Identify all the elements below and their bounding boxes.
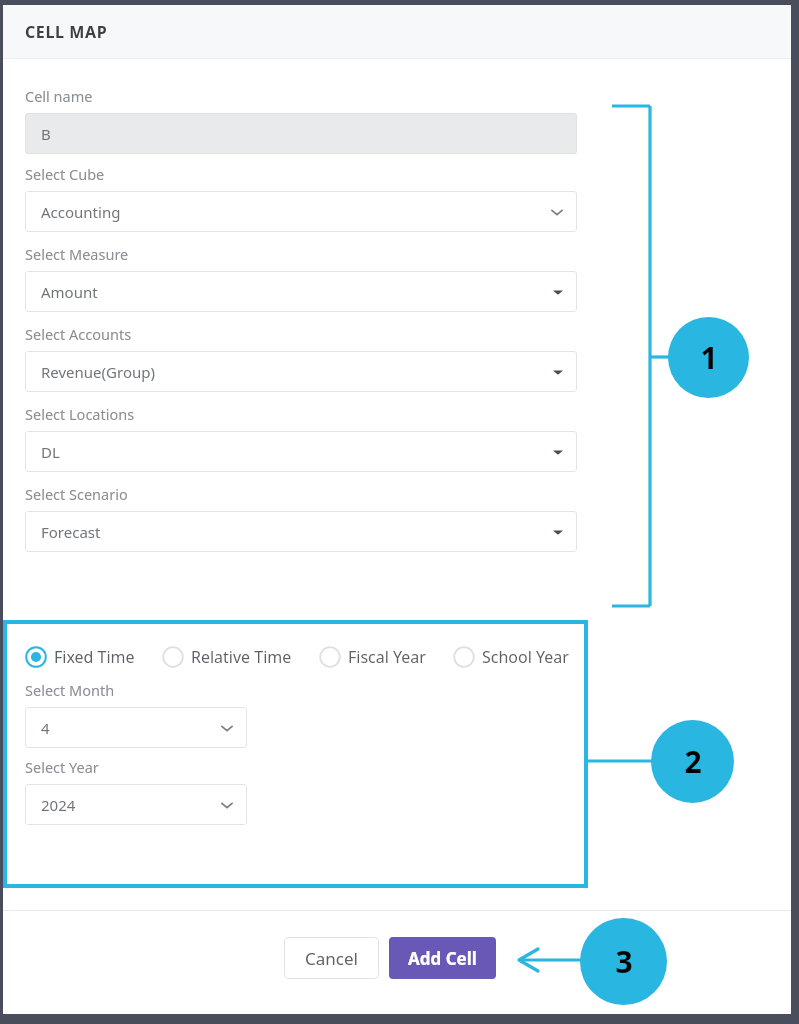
staticText: Select Accounts (25, 324, 132, 344)
staticText: Revenue(Group) (41, 362, 155, 382)
button[interactable]: Accounting (25, 191, 577, 232)
button[interactable]: Amount (25, 271, 577, 312)
button[interactable]: DL (25, 431, 577, 472)
staticText: Cancel (305, 947, 358, 970)
staticText: Amount (41, 282, 98, 302)
button[interactable]: School Year (453, 646, 571, 668)
button[interactable]: Cancel (284, 937, 379, 979)
staticText: School Year (482, 646, 569, 668)
button[interactable]: Fixed Time (25, 646, 137, 668)
button[interactable]: 2024 (25, 784, 247, 825)
staticText: 1 (700, 337, 718, 378)
button[interactable]: B (25, 113, 577, 154)
staticText: Select Measure (25, 244, 129, 264)
button[interactable]: Relative Time (162, 646, 294, 668)
staticText: DL (41, 442, 60, 462)
staticText: Select Scenario (25, 484, 128, 504)
staticText: 2024 (41, 795, 76, 815)
staticText: Select Locations (25, 404, 135, 424)
staticText: CELL MAP (25, 21, 108, 43)
staticText: Select Cube (25, 164, 105, 184)
staticText: B (41, 124, 51, 144)
staticText: Relative Time (191, 646, 292, 668)
staticText: Fixed Time (54, 646, 135, 668)
button[interactable]: Revenue(Group) (25, 351, 577, 392)
staticText: Forecast (41, 522, 101, 542)
staticText: Accounting (41, 202, 121, 222)
button[interactable]: Fiscal Year (319, 646, 428, 668)
staticText: 3 (615, 941, 633, 982)
staticText: Select Year (25, 757, 99, 777)
staticText: Select Month (25, 680, 115, 700)
staticText: Cell name (25, 86, 93, 106)
staticText: Add Cell (408, 947, 477, 970)
button[interactable]: 4 (25, 707, 247, 748)
button[interactable]: Forecast (25, 511, 577, 552)
staticText: 4 (41, 718, 50, 738)
staticText: 2 (684, 741, 702, 782)
staticText: Fiscal Year (348, 646, 426, 668)
button[interactable]: Add Cell (389, 937, 496, 979)
